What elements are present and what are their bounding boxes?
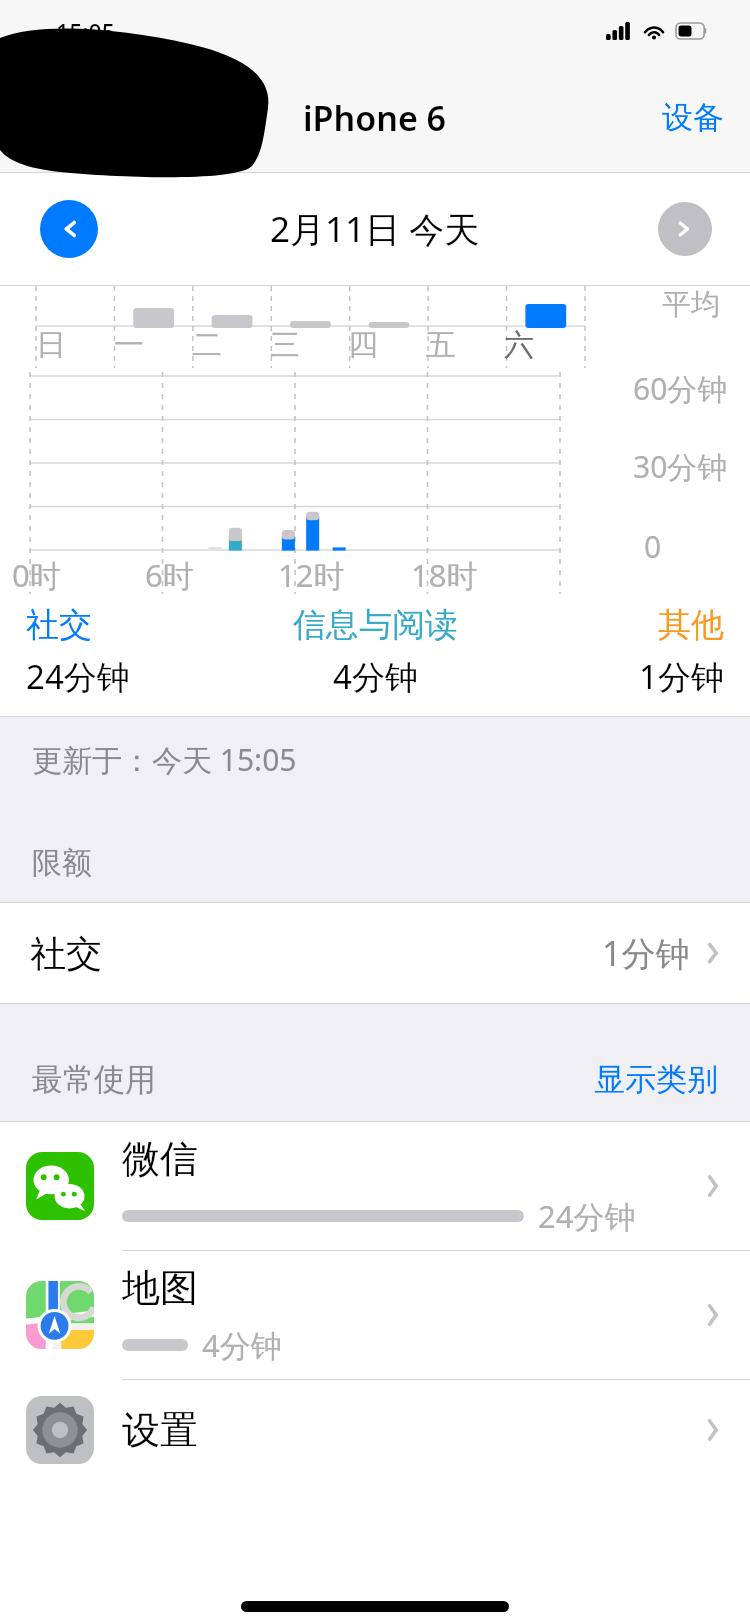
staticText: 社交 — [26, 604, 92, 646]
button[interactable]: 显示类别 — [594, 1060, 718, 1099]
staticText: 五 — [426, 326, 456, 364]
staticText: 微信 — [122, 1135, 198, 1183]
staticText: iPhone 6 — [303, 95, 447, 141]
button[interactable]: 其他 — [509, 604, 724, 699]
staticText: 社交 — [30, 931, 102, 976]
button[interactable]: 后一天 — [658, 202, 712, 256]
staticText: 15:05 — [56, 16, 115, 47]
button[interactable]: 社交 — [0, 903, 750, 1003]
staticText: 其他 — [658, 604, 724, 646]
staticText: 12时 — [278, 554, 345, 596]
staticText: 三 — [270, 326, 300, 364]
button[interactable]: 返回 — [0, 78, 110, 158]
staticText: 显示类别 — [594, 1060, 718, 1099]
staticText: 1分钟 — [602, 930, 690, 976]
staticText: 地图 — [122, 1264, 198, 1312]
staticText: 一 — [114, 326, 144, 364]
staticText: 2月11日 今天 — [270, 205, 480, 253]
staticText: 限额 — [32, 844, 92, 882]
staticText: 24分钟 — [538, 1195, 636, 1237]
staticText: 平均 — [662, 286, 720, 323]
button[interactable]: 设置 — [0, 1380, 750, 1480]
staticText: 设备 — [662, 98, 724, 137]
staticText: 信息与阅读 — [293, 604, 458, 646]
staticText: 设置 — [122, 1406, 198, 1454]
staticText: 6时 — [145, 554, 194, 596]
staticText: 六 — [504, 326, 534, 364]
staticText: 四 — [348, 326, 378, 364]
staticText: 二 — [192, 326, 222, 364]
button[interactable]: 设备 — [636, 84, 750, 151]
staticText: 最常使用 — [32, 1060, 156, 1099]
staticText: 30分钟 — [633, 446, 728, 487]
staticText: 24分钟 — [26, 654, 130, 699]
staticText: 日 — [36, 326, 66, 364]
staticText: 0时 — [12, 554, 61, 596]
staticText: 18时 — [411, 554, 478, 596]
staticText: 4分钟 — [333, 654, 418, 699]
staticText: 1分钟 — [639, 654, 724, 699]
button[interactable]: 微信 — [0, 1122, 750, 1250]
staticText: 4分钟 — [202, 1324, 282, 1366]
staticText: 0 — [644, 526, 662, 567]
button[interactable]: 信息与阅读 — [241, 604, 509, 699]
button[interactable]: 前一天 — [40, 200, 98, 258]
staticText: 60分钟 — [633, 368, 728, 409]
button[interactable]: 地图 — [0, 1251, 750, 1379]
staticText: 更新于：今天 15:05 — [32, 739, 297, 780]
button[interactable]: 社交 — [26, 604, 241, 699]
